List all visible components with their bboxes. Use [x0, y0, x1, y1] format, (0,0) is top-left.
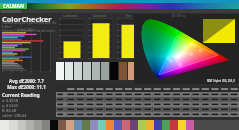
- button[interactable]: [128, 62, 136, 80]
- button[interactable]: CALMAN: [0, 3, 27, 9]
- staticText: RGB Triplet: 255, 255, 0: [207, 79, 236, 83]
- staticText: Avg dE2000: 7.7: [0, 78, 53, 84]
- staticText: CALMAN: [3, 3, 24, 9]
- staticText: ColorChecker: [2, 14, 52, 24]
- button[interactable]: Luminance: [57, 14, 84, 59]
- button[interactable]: Hue: [115, 14, 142, 59]
- staticText: R: 86.58: [2, 108, 17, 113]
- staticText: CIE 1931 xy: [134, 14, 223, 18]
- staticText: Luminance: [57, 14, 84, 18]
- staticText: Hue: [115, 14, 142, 18]
- button[interactable]: Measurement results table: [56, 86, 239, 119]
- staticText: Delta E 2000: [0, 28, 50, 32]
- button[interactable]: CIE chromaticity chart: [134, 14, 239, 84]
- staticText: cd/m²: 296.64: [2, 113, 27, 118]
- staticText: Shadow analysis is performed with the X-…: [2, 21, 58, 33]
- staticText: x: 0.4558: [2, 98, 18, 103]
- staticText: Current Reading: [2, 92, 40, 98]
- button[interactable]: Saturation: [86, 14, 113, 59]
- staticText: Saturation: [86, 14, 113, 18]
- staticText: y: 0.5243: [2, 103, 18, 108]
- staticText: Max dE2000: 11.1: [0, 84, 53, 90]
